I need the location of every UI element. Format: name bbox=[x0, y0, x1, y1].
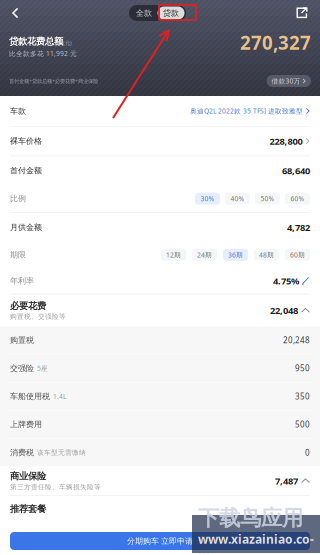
button[interactable]: 分期购车 立即申请 bbox=[10, 532, 310, 550]
button[interactable]: Back bbox=[0, 0, 27, 26]
button[interactable]: 月供金额 bbox=[0, 213, 320, 242]
staticText: 购置税 bbox=[10, 335, 34, 345]
button[interactable]: 12期 bbox=[161, 249, 186, 261]
button[interactable]: 60期 bbox=[285, 249, 310, 261]
staticText: 950 bbox=[295, 363, 310, 373]
button[interactable]: 车款 bbox=[0, 96, 320, 126]
staticText: 68,640 bbox=[282, 164, 310, 177]
staticText: www.xiazainiao.com bbox=[198, 531, 314, 555]
button[interactable]: 首付金额 bbox=[0, 156, 320, 185]
staticText: 交强险 bbox=[10, 363, 34, 373]
button[interactable]: 30% bbox=[195, 193, 220, 205]
staticText: 期限 bbox=[10, 250, 26, 260]
staticText: 车款 bbox=[10, 106, 26, 116]
staticText: 首付金额+贷款总额+必要花费+商业保险 bbox=[9, 77, 98, 85]
button[interactable]: 48期 bbox=[254, 249, 279, 261]
staticText: 奥迪Q2L 2022款 35 TFSI 进取致雅型 bbox=[190, 107, 303, 115]
staticText: 月供金额 bbox=[10, 222, 42, 232]
staticText: 贷款花费总额 bbox=[9, 36, 63, 47]
button[interactable]: 全款 bbox=[130, 6, 157, 19]
staticText: 全款 bbox=[136, 8, 152, 18]
staticText: 22,048 bbox=[270, 304, 298, 317]
button[interactable]: 60% bbox=[285, 193, 310, 205]
button[interactable]: Share bbox=[288, 0, 320, 26]
staticText: 4,782 bbox=[287, 221, 310, 233]
staticText: 首付金额 bbox=[10, 166, 42, 176]
staticText: 350 bbox=[295, 391, 310, 402]
staticText: 裸车价格 bbox=[10, 136, 42, 146]
staticText: 12期 bbox=[166, 250, 181, 259]
staticText: (元) bbox=[63, 39, 72, 47]
staticText: 36期 bbox=[228, 250, 243, 259]
staticText: 必要花费 bbox=[10, 300, 46, 312]
staticText: 分期购车 立即申请 bbox=[127, 536, 193, 546]
staticText: 228,800 bbox=[270, 135, 303, 147]
button[interactable]: 40% bbox=[225, 193, 250, 205]
staticText: 500 bbox=[295, 419, 310, 430]
staticText: 270,327 bbox=[240, 30, 311, 55]
button[interactable]: 24期 bbox=[192, 249, 217, 261]
staticText: 推荐套餐 bbox=[10, 503, 46, 515]
staticText: 商业保险 bbox=[10, 470, 46, 482]
staticText: 24期 bbox=[197, 250, 212, 259]
button[interactable]: 裸车价格 bbox=[0, 127, 320, 156]
staticText: 购置税、交强险等 bbox=[10, 312, 66, 321]
staticText: 48期 bbox=[259, 250, 274, 259]
staticText: 1.4L bbox=[53, 392, 66, 401]
button[interactable]: 商业保险 bbox=[0, 466, 320, 495]
staticText: 20,248 bbox=[283, 335, 310, 345]
staticText: 40% bbox=[230, 194, 244, 203]
button[interactable]: 借款30万 bbox=[267, 75, 311, 87]
button[interactable]: 36期 bbox=[223, 249, 248, 261]
staticText: 第三方责任险、车辆损失险等 bbox=[10, 483, 101, 491]
button[interactable]: 50% bbox=[255, 193, 280, 205]
staticText: 消费税 bbox=[10, 448, 34, 457]
staticText: 借款30万 bbox=[272, 77, 301, 85]
staticText: 车船使用税 bbox=[10, 391, 50, 401]
staticText: 7,487 bbox=[275, 475, 298, 487]
staticText: 50% bbox=[260, 194, 274, 203]
staticText: 贷款 bbox=[163, 8, 179, 18]
staticText: 60% bbox=[290, 194, 304, 203]
staticText: 60期 bbox=[290, 250, 305, 259]
staticText: 比全款多花 11,992 元 bbox=[9, 49, 77, 58]
staticText: 上牌费用 bbox=[10, 419, 42, 429]
staticText: 4.75% bbox=[273, 275, 299, 287]
staticText: 0 bbox=[305, 447, 310, 458]
staticText: 5座 bbox=[37, 364, 48, 373]
staticText: 30% bbox=[200, 194, 214, 203]
staticText: 该车型无需缴纳 bbox=[37, 448, 86, 457]
staticText: 年利率 bbox=[10, 276, 34, 286]
staticText: 比例 bbox=[10, 194, 26, 204]
button[interactable]: 贷款 bbox=[157, 6, 184, 19]
button[interactable]: 必要花费 bbox=[0, 294, 320, 326]
staticText: 下载鸟应用 bbox=[198, 505, 303, 531]
